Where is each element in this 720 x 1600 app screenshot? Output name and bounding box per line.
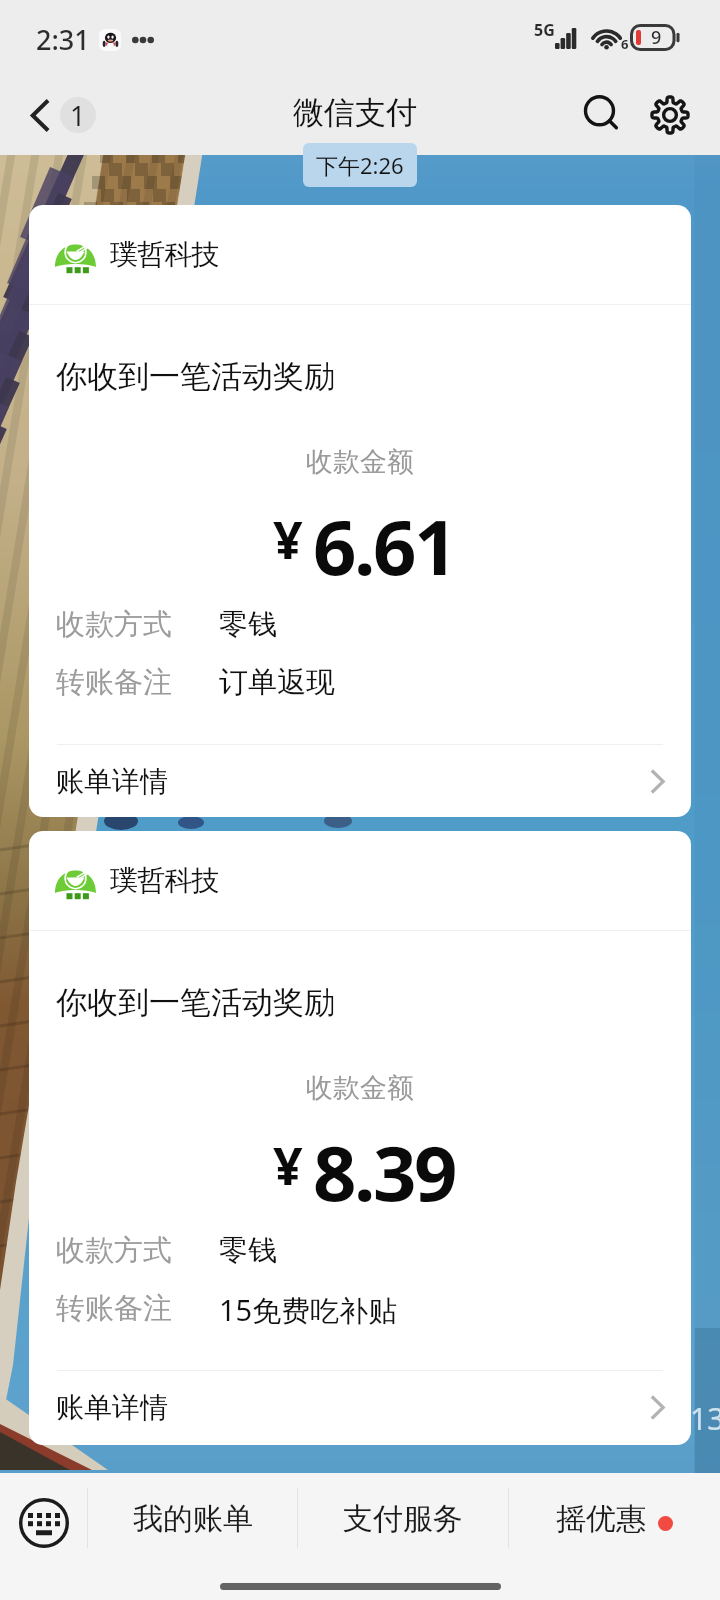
button[interactable]: 支付服务 [298,1473,508,1572]
staticText: 零钱 [219,1232,277,1269]
button[interactable]: Settings [640,85,700,145]
staticText: 转账备注 [56,1290,172,1327]
staticText: 转账备注 [56,664,172,701]
staticText: 6 [621,35,629,53]
staticText: 摇优惠 [556,1500,646,1538]
staticText: 8.39 [313,1120,456,1224]
button[interactable]: Keyboard [0,1473,87,1572]
button[interactable]: 璞哲科技 [29,831,691,1445]
button[interactable]: 摇优惠 [509,1473,720,1572]
staticText: 6.61 [313,494,456,598]
button[interactable]: Search [572,85,632,145]
staticText: ¥ [273,1129,303,1200]
button[interactable]: 我的账单 [88,1473,297,1572]
staticText: 微信支付 [293,93,417,132]
staticText: 你收到一笔活动奖励 [56,357,335,396]
staticText: 收款方式 [56,1232,172,1269]
staticText: 5G [534,19,555,41]
staticText: 2:31 [36,21,90,58]
staticText: 账单详情 [56,1390,168,1425]
staticText: 13 [690,1398,720,1439]
staticText: 我的账单 [133,1500,253,1538]
staticText: 璞哲科技 [110,237,219,272]
staticText: 1 [70,97,86,133]
staticText: 你收到一笔活动奖励 [56,983,335,1022]
staticText: ¥ [273,503,303,574]
staticText: 收款方式 [56,606,172,643]
staticText: 账单详情 [56,764,168,799]
staticText: 9 [651,25,662,50]
staticText: 璞哲科技 [110,863,219,898]
staticText: 订单返现 [219,664,335,701]
staticText: 支付服务 [343,1500,463,1538]
staticText: 零钱 [219,606,277,643]
button[interactable]: 璞哲科技 [29,205,691,817]
staticText: 15免费吃补贴 [219,1290,398,1330]
staticText: 收款金额 [306,445,414,479]
staticText: 下午2:26 [316,150,404,180]
button[interactable]: Back [22,89,104,141]
staticText: 收款金额 [306,1071,414,1105]
